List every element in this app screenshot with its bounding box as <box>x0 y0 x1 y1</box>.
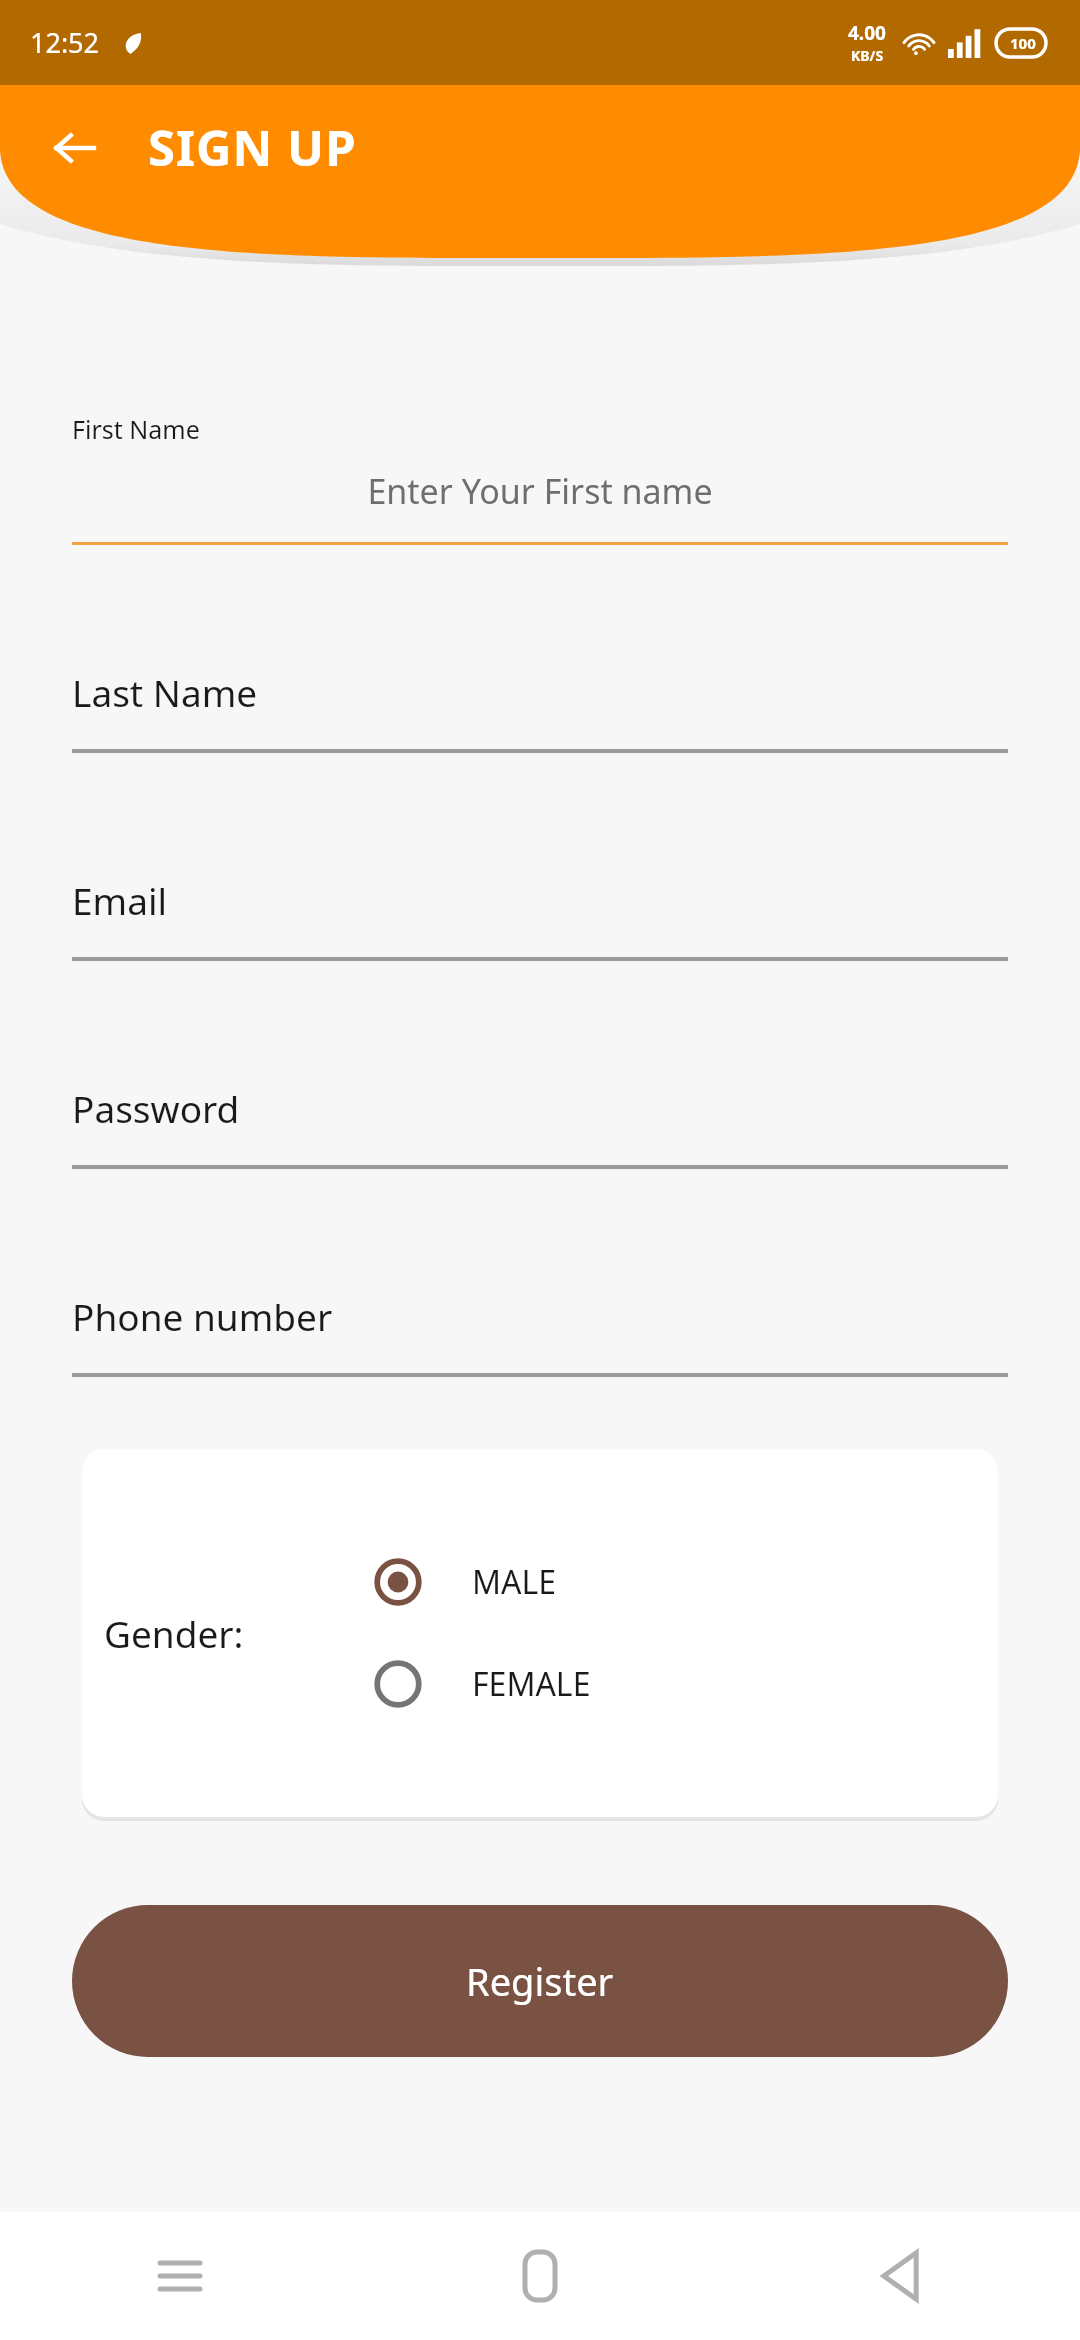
button[interactable]: Home <box>360 2212 720 2340</box>
button[interactable]: First Name <box>72 412 1008 545</box>
button[interactable]: Register <box>72 1905 1008 2057</box>
staticText: KB/S <box>851 46 884 65</box>
staticText: Password <box>72 1083 240 1133</box>
staticText: SIGN UP <box>148 114 357 181</box>
staticText: Email <box>72 875 168 925</box>
staticText: 100 <box>1010 33 1036 53</box>
staticText: 4.00 <box>848 20 886 46</box>
button[interactable]: Password <box>72 1083 1008 1169</box>
staticText: Last Name <box>72 667 258 717</box>
button[interactable]: Phone number <box>72 1291 1008 1377</box>
button[interactable]: Email <box>72 875 1008 961</box>
button[interactable]: Last Name <box>72 667 1008 753</box>
staticText: Phone number <box>72 1291 333 1341</box>
button[interactable]: Back <box>720 2212 1080 2340</box>
button[interactable]: MALE <box>372 1556 557 1608</box>
staticText: Gender: <box>104 1608 244 1658</box>
staticText: 12:52 <box>30 24 100 61</box>
button[interactable]: FEMALE <box>372 1658 591 1710</box>
button[interactable]: Back <box>44 117 106 179</box>
button[interactable]: Recent apps <box>0 2212 360 2340</box>
staticText: MALE <box>472 1560 557 1604</box>
staticText: Enter Your First name <box>72 468 1008 514</box>
staticText: First Name <box>72 412 200 446</box>
staticText: FEMALE <box>472 1662 591 1706</box>
staticText: Register <box>466 1955 614 2007</box>
